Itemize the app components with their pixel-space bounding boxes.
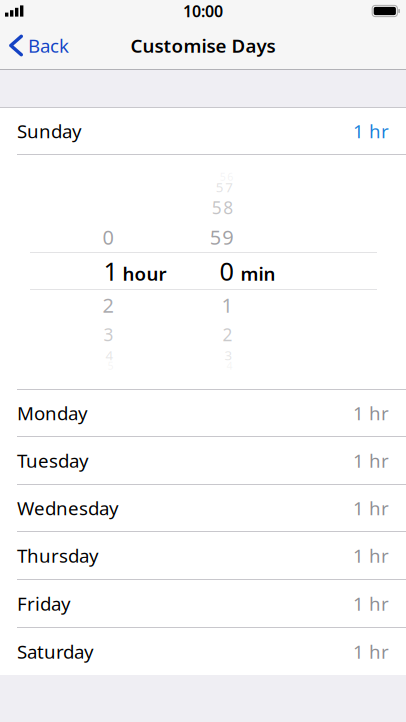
staticText: Sunday bbox=[17, 119, 82, 143]
staticText: 0 bbox=[220, 254, 234, 288]
staticText: 1 hr bbox=[353, 496, 389, 520]
staticText: Thursday bbox=[17, 543, 99, 568]
staticText: Wednesday bbox=[17, 496, 119, 520]
button[interactable]: Wednesday bbox=[0, 485, 406, 531]
staticText: 1 hr bbox=[353, 119, 389, 143]
staticText: 59 bbox=[210, 224, 233, 250]
button[interactable]: Friday bbox=[0, 580, 406, 627]
staticText: 1 bbox=[221, 292, 232, 318]
staticText: Monday bbox=[17, 401, 88, 425]
staticText: 5 bbox=[107, 358, 113, 373]
staticText: 10:00 bbox=[183, 0, 223, 22]
button[interactable]: Sunday bbox=[0, 108, 406, 154]
button[interactable]: Thursday bbox=[0, 532, 406, 579]
staticText: Saturday bbox=[17, 639, 94, 664]
staticText: Tuesday bbox=[17, 448, 89, 473]
staticText: 56 bbox=[220, 169, 233, 184]
staticText: 3 bbox=[224, 346, 232, 364]
staticText: 1 hr bbox=[353, 543, 389, 568]
staticText: 4 bbox=[226, 358, 232, 373]
staticText: 2 bbox=[102, 292, 113, 318]
staticText: 58 bbox=[212, 196, 233, 219]
staticText: 3 bbox=[103, 323, 113, 346]
staticText: Back bbox=[28, 33, 69, 58]
staticText: 4 bbox=[105, 346, 113, 364]
staticText: min bbox=[241, 261, 276, 286]
staticText: 1 hr bbox=[353, 591, 389, 616]
staticText: Friday bbox=[17, 591, 71, 616]
button[interactable]: Back bbox=[0, 22, 79, 69]
staticText: 57 bbox=[216, 178, 233, 196]
staticText: 1 bbox=[103, 254, 117, 288]
button[interactable]: Tuesday bbox=[0, 437, 406, 484]
staticText: hour bbox=[122, 261, 166, 286]
staticText: Customise Days bbox=[130, 33, 275, 58]
staticText: 1 hr bbox=[353, 401, 389, 425]
staticText: 0 bbox=[102, 224, 113, 250]
staticText: 1 hr bbox=[353, 448, 389, 473]
staticText: 2 bbox=[222, 323, 232, 346]
staticText: 1 hr bbox=[353, 639, 389, 664]
button[interactable]: Saturday bbox=[0, 628, 406, 675]
button[interactable]: Monday bbox=[0, 390, 406, 436]
